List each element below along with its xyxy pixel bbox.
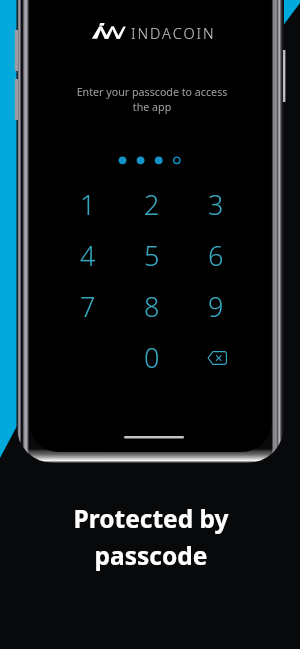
button[interactable]: 1	[56, 179, 120, 230]
button[interactable]: 2	[120, 179, 184, 230]
staticText: INDACOIN	[131, 23, 216, 43]
button[interactable]: 6	[184, 230, 248, 281]
staticText: 1	[80, 186, 96, 223]
other: Backspace	[207, 351, 227, 365]
button[interactable]: Backspace	[184, 332, 248, 383]
staticText: 7	[80, 288, 96, 325]
staticText: Protected by passcode	[1, 502, 300, 572]
staticText: 9	[208, 288, 224, 325]
button[interactable]: 8	[120, 281, 184, 332]
staticText: 6	[208, 237, 224, 274]
staticText: Enter your passcode to access the app	[32, 85, 272, 115]
button[interactable]: 3	[184, 179, 248, 230]
button[interactable]: 5	[120, 230, 184, 281]
staticText: 8	[144, 288, 160, 325]
button[interactable]: 9	[184, 281, 248, 332]
button[interactable]: 4	[56, 230, 120, 281]
staticText: 5	[144, 237, 160, 274]
button[interactable]: 0	[120, 332, 184, 383]
staticText: 0	[144, 339, 160, 376]
staticText: 2	[144, 186, 160, 223]
staticText: 4	[80, 237, 96, 274]
button[interactable]: 7	[56, 281, 120, 332]
staticText: 3	[208, 186, 224, 223]
